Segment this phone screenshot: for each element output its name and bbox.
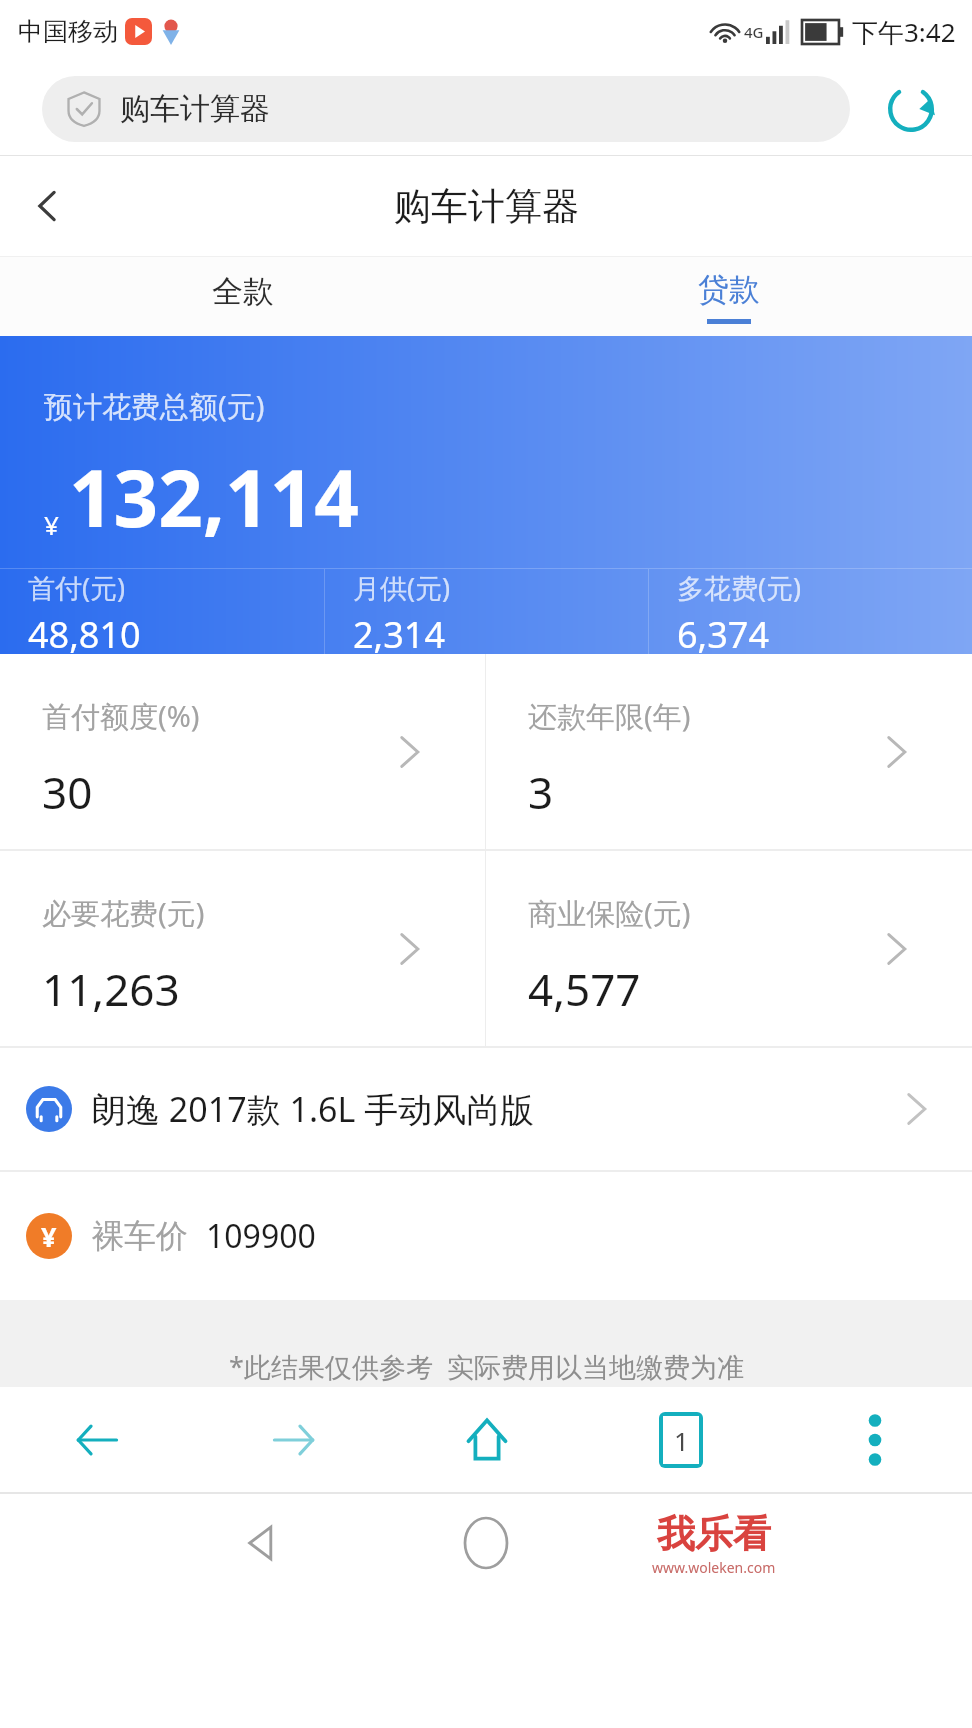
staticText: 48,810: [28, 610, 141, 654]
staticText: 1: [674, 1423, 689, 1458]
staticText: 4,577: [528, 959, 641, 1019]
button[interactable]: ¥: [0, 1172, 972, 1300]
staticText: 多花费(元): [677, 569, 802, 606]
staticText: 我乐看: [657, 1510, 771, 1558]
staticText: 3: [528, 762, 554, 822]
staticText: 朗逸 2017款 1.6L 手动风尚版: [92, 1086, 535, 1132]
staticText: www.woleken.com: [652, 1558, 776, 1577]
staticText: 11,263: [42, 959, 180, 1019]
staticText: 裸车价: [92, 1216, 188, 1256]
button[interactable]: 首付(元): [0, 569, 324, 654]
button[interactable]: 还款年限(年): [486, 654, 972, 849]
staticText: 109900: [206, 1214, 316, 1258]
button[interactable]: 购车计算器: [42, 76, 850, 142]
button[interactable]: 主页: [390, 1387, 584, 1492]
staticText: 下午3:42: [852, 14, 956, 50]
staticText: 必要花费(元): [42, 893, 205, 933]
button[interactable]: 多花费(元): [649, 569, 972, 654]
staticText: 还款年限(年): [528, 696, 691, 736]
staticText: 4G: [744, 22, 764, 42]
button[interactable]: 商业保险(元): [486, 851, 972, 1046]
staticText: 中国移动: [18, 16, 118, 47]
staticText: 购车计算器: [120, 90, 270, 128]
button[interactable]: 必要花费(元): [0, 851, 485, 1046]
button[interactable]: 刷新: [850, 63, 972, 155]
button[interactable]: 首付额度(%): [0, 654, 485, 849]
staticText: 30: [42, 762, 93, 822]
button[interactable]: 朗逸 2017款 1.6L 手动风尚版: [0, 1048, 972, 1170]
staticText: 贷款: [698, 270, 760, 309]
staticText: 预计花费总额(元): [44, 386, 265, 426]
staticText: ¥: [41, 1218, 57, 1255]
button[interactable]: 贷款: [486, 257, 972, 336]
staticText: 月供(元): [353, 569, 451, 606]
staticText: 首付(元): [28, 569, 126, 606]
staticText: 首付额度(%): [42, 696, 200, 736]
staticText: 6,374: [677, 610, 770, 654]
button[interactable]: 月供(元): [325, 569, 648, 654]
staticText: 全款: [212, 272, 274, 311]
staticText: 2,314: [353, 610, 446, 654]
staticText: ¥: [44, 507, 59, 542]
button[interactable]: 后退: [0, 1387, 195, 1492]
button[interactable]: 返回: [0, 158, 96, 254]
staticText: 132,114: [69, 444, 359, 550]
button[interactable]: 前进: [195, 1387, 390, 1492]
staticText: 商业保险(元): [528, 893, 691, 933]
button[interactable]: 更多: [778, 1387, 972, 1492]
staticText: *此结果仅供参考 实际费用以当地缴费为准: [229, 1348, 744, 1385]
button[interactable]: 全款: [0, 257, 486, 336]
button[interactable]: 标签页: [584, 1387, 778, 1492]
staticText: 购车计算器: [394, 183, 579, 230]
